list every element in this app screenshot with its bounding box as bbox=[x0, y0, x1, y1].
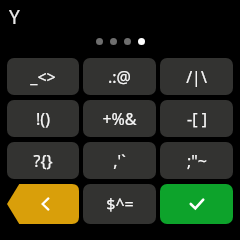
staticText: !() bbox=[36, 108, 50, 130]
staticText: .:@ bbox=[108, 66, 131, 88]
button[interactable]: !() bbox=[7, 100, 79, 137]
button[interactable]: .:@ bbox=[83, 58, 156, 95]
button[interactable]: ,'` bbox=[83, 142, 156, 179]
button[interactable]: _<> bbox=[7, 58, 79, 95]
button[interactable]: +%& bbox=[83, 100, 156, 137]
button[interactable]: Back bbox=[7, 184, 79, 224]
button[interactable]: ;"~ bbox=[160, 142, 233, 179]
staticText: /|\ bbox=[186, 66, 207, 88]
staticText: ,'` bbox=[113, 150, 126, 172]
staticText: Y bbox=[9, 4, 20, 30]
staticText: _<> bbox=[30, 66, 56, 88]
staticText: $^= bbox=[106, 193, 134, 215]
button[interactable]: Confirm bbox=[160, 184, 233, 224]
button[interactable]: -[ ] bbox=[160, 100, 233, 137]
staticText: ;"~ bbox=[187, 150, 207, 172]
staticText: -[ ] bbox=[187, 108, 207, 130]
button[interactable]: $^= bbox=[83, 184, 156, 224]
staticText: ?{} bbox=[33, 150, 53, 172]
button[interactable]: /|\ bbox=[160, 58, 233, 95]
button[interactable]: ?{} bbox=[7, 142, 79, 179]
staticText: +%& bbox=[102, 108, 137, 130]
